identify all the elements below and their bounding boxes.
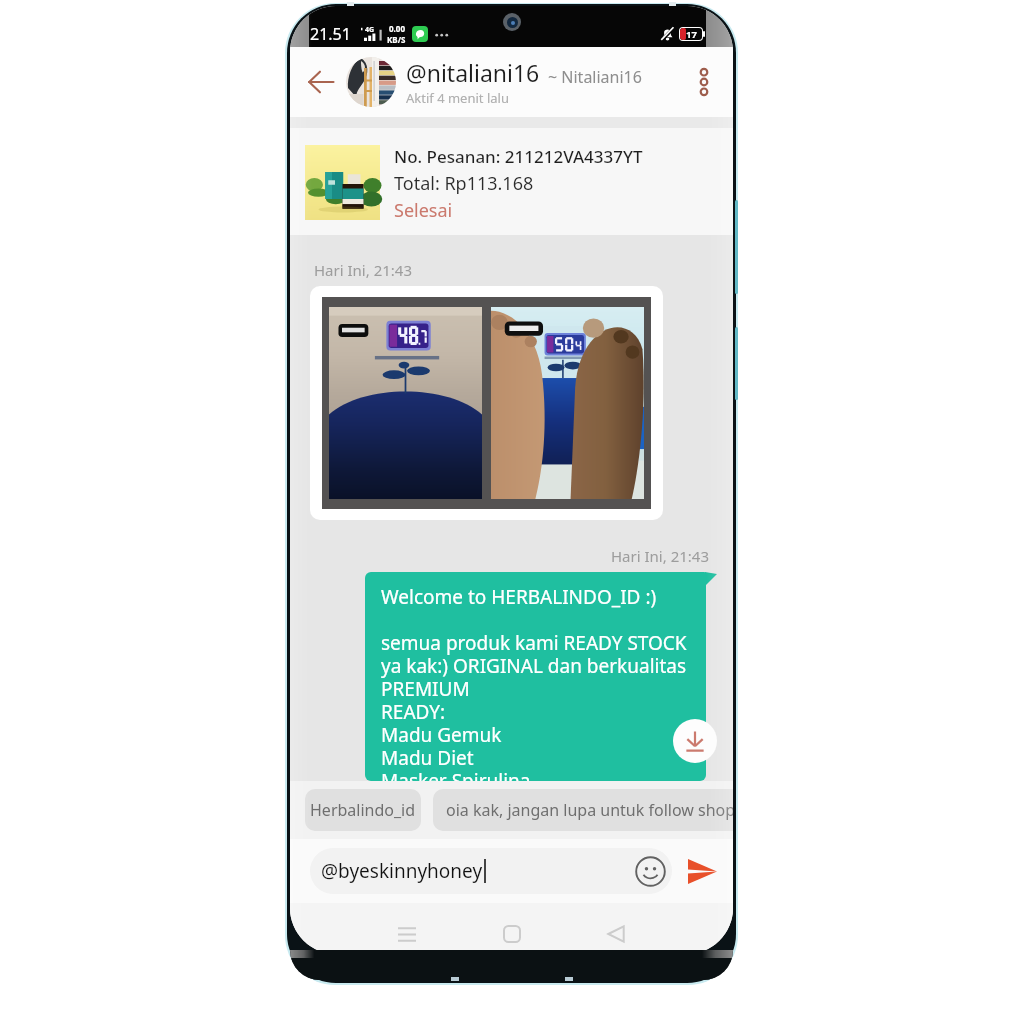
staticText: 0.00 [389,23,405,34]
staticText: 4G [365,25,375,35]
staticText: Aktif 4 menit lalu [406,89,509,107]
button[interactable]: More options [687,65,721,99]
staticText: 17 [686,28,697,40]
staticText: Total: Rp113.168 [394,171,534,196]
button[interactable]: Recent apps [390,917,424,951]
button[interactable]: Download [673,719,717,763]
button[interactable]: Home [495,917,529,951]
button[interactable] [310,286,663,520]
staticText: @nitaliani16 [406,57,540,88]
button[interactable]: Back [599,917,633,951]
button[interactable]: Send [683,852,721,890]
staticText: @byeskinnyhoney [321,858,483,884]
button[interactable]: Emoji [635,856,666,887]
button[interactable]: Back [300,61,342,103]
staticText: Herbalindo_id [310,799,416,821]
button[interactable]: No. Pesanan: 211212VA4337YT [290,128,733,235]
button[interactable] [346,57,396,107]
staticText: Selesai [394,198,453,223]
staticText: Welcome to HERBALINDO_ID :) semua produk… [381,584,687,781]
staticText: KB/S [387,34,406,45]
staticText: oia kak, jangan lupa untuk follow shopee… [446,799,733,821]
button[interactable]: Herbalindo_id [305,789,421,831]
staticText: No. Pesanan: 211212VA4337YT [394,145,643,168]
staticText: 21.51 [310,23,351,45]
staticText: Hari Ini, 21:43 [611,546,709,566]
button[interactable]: Welcome to HERBALINDO_ID :) semua produk… [365,572,706,781]
staticText: Hari Ini, 21:43 [314,260,412,280]
button[interactable]: @byeskinnyhoney [310,848,672,894]
button[interactable]: oia kak, jangan lupa untuk follow shopee… [433,789,733,831]
staticText: ~ Nitaliani16 [548,66,642,88]
